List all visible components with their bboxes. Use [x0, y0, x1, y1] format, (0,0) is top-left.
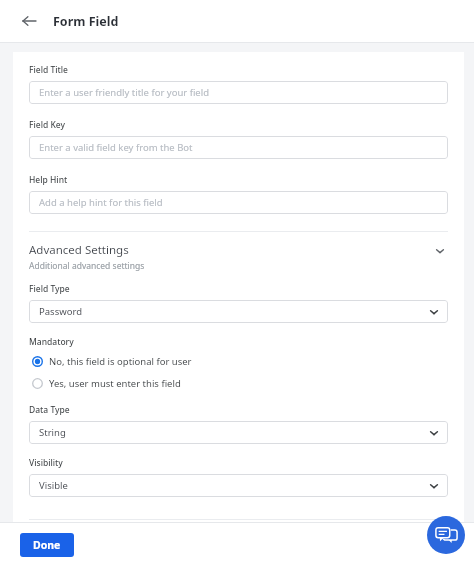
other: Collapse [432, 244, 448, 258]
staticText: Visible [39, 479, 68, 492]
staticText: Field Type [29, 283, 70, 295]
staticText: No, this field is optional for user [49, 355, 192, 368]
button[interactable]: Visible [29, 474, 448, 497]
staticText: Enter a valid field key from the Bot [39, 141, 193, 154]
staticText: Field Title [29, 64, 68, 76]
button[interactable]: Enter a valid field key from the Bot [29, 136, 448, 159]
button[interactable]: Yes, user must enter this field [29, 374, 448, 392]
button[interactable]: Back [18, 10, 40, 32]
staticText: Form Field [53, 13, 119, 30]
staticText: Additional advanced settings [29, 260, 145, 272]
staticText: Password [39, 305, 82, 318]
button[interactable]: No, this field is optional for user [29, 352, 448, 370]
button[interactable]: Password [29, 300, 448, 323]
staticText: String [39, 426, 66, 439]
staticText: Enter a user friendly title for your fie… [39, 86, 210, 99]
button[interactable]: Open chat [427, 516, 465, 554]
staticText: Field Key [29, 119, 66, 131]
button[interactable]: Enter a user friendly title for your fie… [29, 81, 448, 104]
staticText: Help Hint [29, 174, 68, 186]
button[interactable]: Advanced Settings [29, 232, 448, 272]
staticText: Add a help hint for this field [39, 196, 163, 209]
button[interactable]: Done [20, 533, 74, 557]
button[interactable]: Add a help hint for this field [29, 191, 448, 214]
staticText: Data Type [29, 404, 70, 416]
staticText: Advanced Settings [29, 242, 129, 258]
staticText: Yes, user must enter this field [49, 377, 181, 390]
staticText: Mandatory [29, 336, 74, 348]
button[interactable]: String [29, 421, 448, 444]
staticText: Visibility [29, 457, 63, 469]
staticText: Done [33, 538, 61, 552]
